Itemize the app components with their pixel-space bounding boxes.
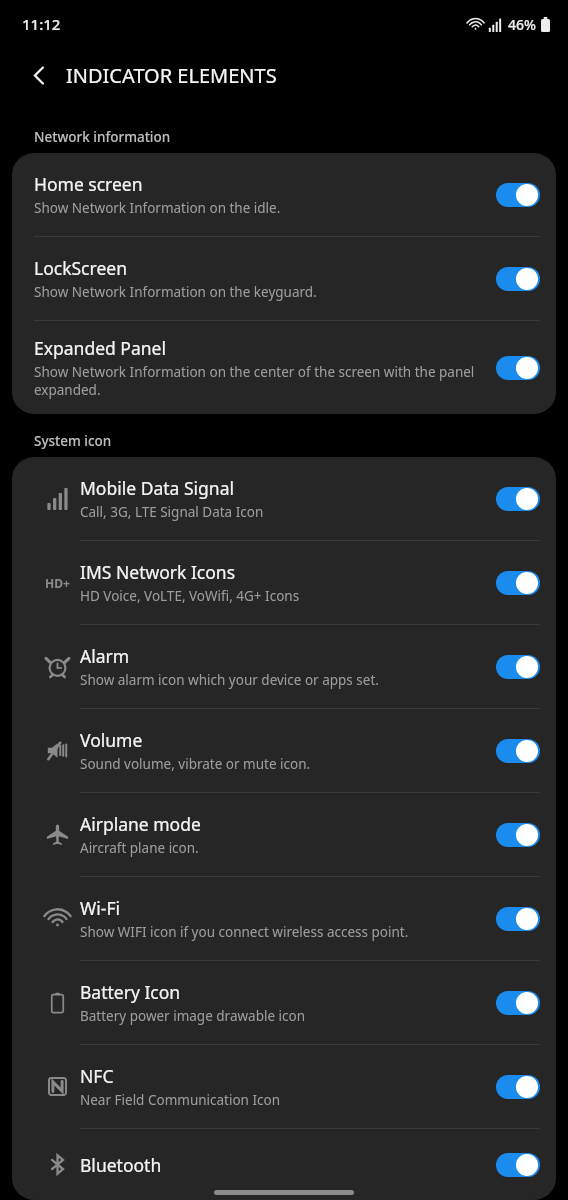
staticText: Bluetooth	[80, 1153, 162, 1177]
staticText: Volume	[80, 728, 143, 752]
staticText: Wi-Fi	[80, 896, 121, 920]
staticText: Battery Icon	[80, 980, 181, 1004]
staticText: System icon	[34, 432, 112, 450]
staticText: Sound volume, vibrate or mute icon.	[80, 755, 311, 773]
staticText: NFC	[80, 1064, 114, 1088]
staticText: Network information	[34, 128, 171, 146]
staticText: IMS Network Icons	[80, 560, 236, 584]
staticText: Show Network Information on the keyguard…	[34, 283, 317, 301]
button[interactable]: NFC	[12, 1045, 556, 1128]
button[interactable]: Toggle	[496, 991, 540, 1015]
staticText: Show Network Information on the center o…	[34, 363, 486, 399]
button[interactable]: Alarm	[12, 625, 556, 708]
staticText: INDICATOR ELEMENTS	[66, 62, 277, 89]
staticText: Aircraft plane icon.	[80, 839, 199, 857]
button[interactable]: Toggle	[496, 907, 540, 931]
button[interactable]: Airplane mode	[12, 793, 556, 876]
staticText: Home screen	[34, 172, 143, 196]
staticText: LockScreen	[34, 256, 127, 280]
staticText: 46%	[508, 15, 536, 34]
button[interactable]: Volume	[12, 709, 556, 792]
staticText: Call, 3G, LTE Signal Data Icon	[80, 503, 264, 521]
button[interactable]: Wi-Fi	[12, 877, 556, 960]
button[interactable]: Toggle	[496, 1075, 540, 1099]
button[interactable]: Toggle	[496, 183, 540, 207]
button[interactable]: Toggle	[496, 1153, 540, 1177]
button[interactable]: Back	[22, 58, 56, 92]
button[interactable]: Toggle	[496, 823, 540, 847]
staticText: Show WIFI icon if you connect wireless a…	[80, 923, 409, 941]
button[interactable]: Toggle	[496, 739, 540, 763]
staticText: Show alarm icon which your device or app…	[80, 671, 379, 689]
staticText: Expanded Panel	[34, 336, 166, 360]
staticText: Mobile Data Signal	[80, 476, 234, 500]
button[interactable]: Toggle	[496, 655, 540, 679]
button[interactable]: LockScreen	[12, 237, 556, 320]
button[interactable]: HD+	[12, 541, 556, 624]
staticText: Battery power image drawable icon	[80, 1007, 306, 1025]
button[interactable]: Toggle	[496, 267, 540, 291]
button[interactable]: Expanded Panel	[12, 321, 556, 414]
button[interactable]: Toggle	[496, 356, 540, 380]
staticText: 11:12	[22, 14, 61, 34]
button[interactable]: Mobile Data Signal	[12, 457, 556, 540]
staticText: Airplane mode	[80, 812, 201, 836]
button[interactable]: Toggle	[496, 571, 540, 595]
staticText: HD+	[45, 575, 70, 591]
button[interactable]: Bluetooth	[12, 1129, 556, 1200]
staticText: Alarm	[80, 644, 130, 668]
button[interactable]: Toggle	[496, 487, 540, 511]
staticText: Near Field Communication Icon	[80, 1091, 281, 1109]
staticText: Show Network Information on the idle.	[34, 199, 281, 217]
button[interactable]: Battery Icon	[12, 961, 556, 1044]
button[interactable]: Home screen	[12, 153, 556, 236]
staticText: HD Voice, VoLTE, VoWifi, 4G+ Icons	[80, 587, 300, 605]
